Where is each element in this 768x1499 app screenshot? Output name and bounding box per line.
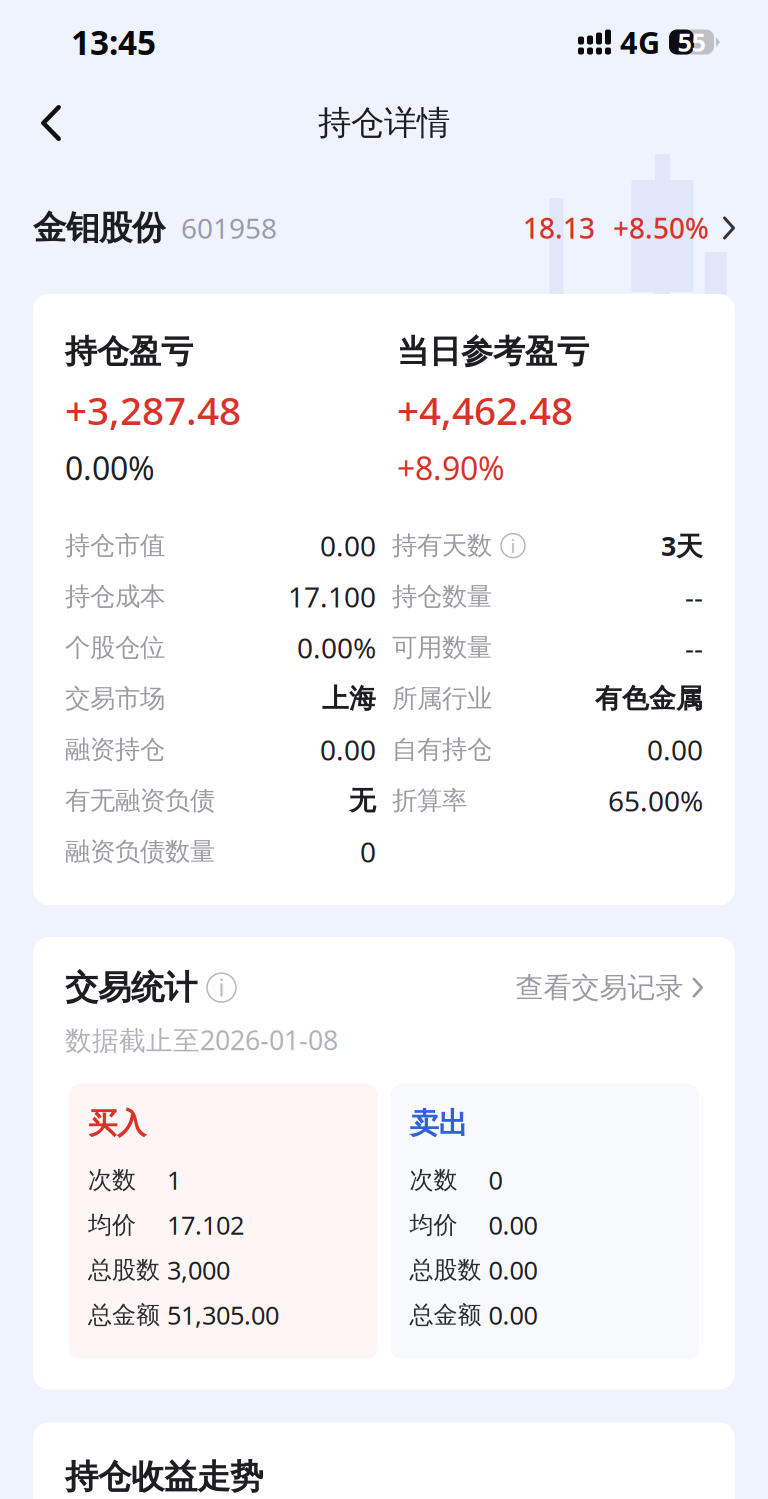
staticText: 融资持仓 <box>65 734 165 765</box>
staticText: i <box>510 533 515 558</box>
staticText: 18.13 <box>523 209 595 247</box>
staticText: 数据截止至2026-01-08 <box>65 1022 338 1057</box>
staticText: 所属行业 <box>392 683 492 714</box>
staticText: 当日参考盈亏 <box>397 332 589 371</box>
staticText: 0.00 <box>488 1253 537 1287</box>
staticText: 持仓详情 <box>318 102 450 143</box>
button[interactable]: 返回 <box>18 90 84 156</box>
staticText: +4,462.48 <box>397 384 573 436</box>
staticText: 持仓数量 <box>392 581 492 612</box>
staticText: 17.102 <box>167 1208 244 1242</box>
staticText: 0.00 <box>488 1298 537 1332</box>
staticText: 折算率 <box>392 785 467 816</box>
staticText: 1 <box>167 1163 181 1197</box>
staticText: 0.00 <box>320 731 376 768</box>
staticText: 0 <box>360 833 376 870</box>
button[interactable]: 查看交易记录 <box>516 970 703 1005</box>
staticText: 交易统计 <box>65 967 197 1008</box>
staticText: 55 <box>677 25 705 59</box>
staticText: 65.00% <box>608 782 703 819</box>
staticText: 0 <box>488 1163 502 1197</box>
staticText: 无 <box>349 784 376 817</box>
staticText: 总金额 <box>409 1300 481 1330</box>
staticText: 0.00 <box>488 1208 537 1242</box>
staticText: 金钼股份 <box>33 207 165 248</box>
staticText: 上海 <box>322 682 376 715</box>
staticText: 查看交易记录 <box>516 970 684 1005</box>
staticText: 0.00 <box>320 527 376 564</box>
staticText: 601958 <box>181 209 277 247</box>
staticText: 总金额 <box>88 1300 160 1330</box>
staticText: 均价 <box>88 1210 136 1240</box>
staticText: 持仓成本 <box>65 581 165 612</box>
staticText: 0.00% <box>65 447 155 489</box>
button[interactable]: 金钼股份 <box>0 162 768 294</box>
staticText: +8.90% <box>397 447 505 489</box>
staticText: 持仓收益走势 <box>65 1456 263 1497</box>
staticText: 总股数 <box>409 1255 481 1285</box>
staticText: 均价 <box>409 1210 457 1240</box>
staticText: 交易市场 <box>65 683 165 714</box>
staticText: 0.00% <box>297 629 376 666</box>
staticText: 融资负债数量 <box>65 836 215 867</box>
staticText: 3,000 <box>167 1253 230 1287</box>
staticText: 3天 <box>661 528 703 563</box>
staticText: 有无融资负债 <box>65 785 215 816</box>
staticText: 13:45 <box>71 20 156 64</box>
staticText: +8.50% <box>613 209 709 247</box>
staticText: 持有天数 <box>392 530 492 561</box>
staticText: 17.100 <box>288 578 376 615</box>
staticText: 51,305.00 <box>167 1298 279 1332</box>
staticText: 自有持仓 <box>392 734 492 765</box>
staticText: -- <box>685 578 703 615</box>
staticText: 可用数量 <box>392 632 492 663</box>
staticText: 卖出 <box>409 1105 467 1141</box>
staticText: 持仓市值 <box>65 530 165 561</box>
staticText: 个股仓位 <box>65 632 165 663</box>
staticText: +3,287.48 <box>65 384 241 436</box>
staticText: 0.00 <box>647 731 703 768</box>
staticText: 买入 <box>88 1105 146 1141</box>
staticText: 4G <box>620 22 660 62</box>
staticText: 有色金属 <box>595 682 703 715</box>
staticText: 总股数 <box>88 1255 160 1285</box>
staticText: 次数 <box>88 1165 136 1195</box>
staticText: 次数 <box>409 1165 457 1195</box>
staticText: i <box>218 973 224 1003</box>
staticText: -- <box>685 629 703 666</box>
staticText: 持仓盈亏 <box>65 332 193 371</box>
